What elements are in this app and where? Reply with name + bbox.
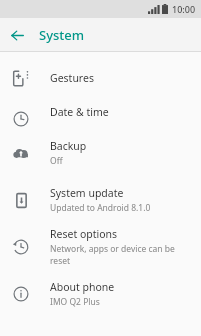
- staticText: System update: [50, 186, 124, 200]
- staticText: IMO Q2 Plus: [50, 296, 100, 308]
- button[interactable]: Gestures: [0, 61, 201, 95]
- button[interactable]: System update: [0, 176, 201, 223]
- staticText: Network, apps or device can be reset: [50, 243, 195, 267]
- staticText: Gestures: [50, 71, 94, 85]
- button[interactable]: Back: [4, 22, 30, 48]
- button[interactable]: Date & time: [0, 95, 201, 129]
- staticText: About phone: [50, 280, 115, 294]
- button[interactable]: Backup: [0, 129, 201, 176]
- staticText: Date & time: [50, 105, 109, 119]
- staticText: System: [39, 26, 85, 44]
- staticText: Off: [50, 155, 63, 167]
- staticText: Updated to Android 8.1.0: [50, 202, 151, 214]
- staticText: 10:00: [172, 3, 196, 15]
- staticText: Backup: [50, 139, 87, 153]
- button[interactable]: Reset options: [0, 223, 201, 270]
- button[interactable]: About phone: [0, 270, 201, 317]
- staticText: Reset options: [50, 227, 118, 241]
